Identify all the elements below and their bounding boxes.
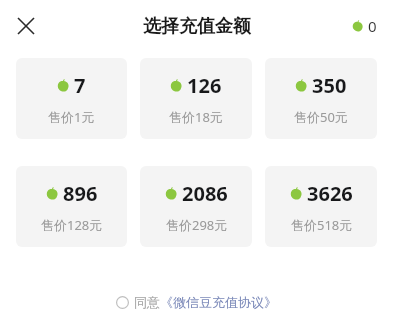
button[interactable]: 126 — [140, 58, 252, 139]
staticText: 0 — [368, 16, 377, 36]
staticText: 售价298元 — [166, 216, 228, 234]
staticText: 售价1元 — [48, 108, 95, 126]
button[interactable]: 896 — [16, 166, 127, 247]
staticText: 售价518元 — [291, 216, 353, 234]
staticText: 同意 — [134, 294, 160, 310]
staticText: 896 — [63, 180, 98, 207]
staticText: 《微信豆充值协议》 — [160, 294, 277, 310]
button[interactable]: 2086 — [140, 166, 252, 247]
staticText: 126 — [187, 72, 222, 99]
button[interactable]: 350 — [265, 58, 377, 139]
staticText: 售价18元 — [169, 108, 223, 126]
staticText: 2086 — [182, 180, 228, 207]
button[interactable]: Close — [10, 10, 42, 42]
staticText: 售价50元 — [294, 108, 348, 126]
button[interactable]: 0 — [352, 16, 377, 36]
staticText: 7 — [74, 72, 86, 99]
staticText: 选择充值金额 — [143, 15, 251, 38]
staticText: 3626 — [307, 180, 353, 207]
button[interactable]: 7 — [16, 58, 127, 139]
staticText: 350 — [312, 72, 347, 99]
button[interactable]: 3626 — [265, 166, 377, 247]
button[interactable]: 同意 — [110, 291, 283, 313]
staticText: 售价128元 — [41, 216, 103, 234]
